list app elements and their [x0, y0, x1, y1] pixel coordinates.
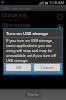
- staticText: Transfer files to/from your computer: [2, 28, 57, 32]
- staticText: If you turn on USB storage, some applica…: [6, 38, 60, 63]
- staticText: Charge phone: [2, 18, 24, 22]
- button[interactable]: Cancel: [34, 64, 60, 71]
- button[interactable]: Charge only: [0, 12, 66, 22]
- staticText: OK: [16, 65, 22, 70]
- button[interactable]: Mass storage: [0, 22, 66, 32]
- staticText: Turn on USB storage: [6, 30, 49, 36]
- staticText: Charge only: [2, 12, 28, 18]
- staticText: 1:08 AM: [49, 0, 65, 5]
- staticText: Cancel: [41, 65, 54, 70]
- staticText: Mass storage: [2, 22, 31, 28]
- button[interactable]: Done: [25, 90, 42, 98]
- staticText: Done: [28, 92, 39, 97]
- staticText: USB connection: [2, 6, 32, 11]
- button[interactable]: OK: [6, 64, 31, 71]
